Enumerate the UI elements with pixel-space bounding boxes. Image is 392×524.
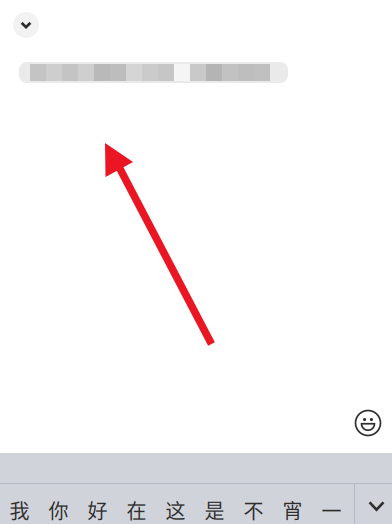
- button[interactable]: Hide candidates: [358, 484, 392, 524]
- staticText: 我: [9, 495, 29, 524]
- button[interactable]: 我: [0, 484, 39, 524]
- button[interactable]: 你: [39, 484, 78, 524]
- staticText: 这: [165, 495, 185, 524]
- button[interactable]: 是: [195, 484, 234, 524]
- staticText: 在: [126, 495, 146, 524]
- staticText: 你: [48, 495, 68, 524]
- button[interactable]: 好: [78, 484, 117, 524]
- staticText: 一: [321, 495, 341, 524]
- button[interactable]: Emoji keyboard: [346, 403, 390, 443]
- button[interactable]: 在: [117, 484, 156, 524]
- button[interactable]: 不: [234, 484, 273, 524]
- button[interactable]: 这: [156, 484, 195, 524]
- staticText: 好: [87, 495, 107, 524]
- button[interactable]: Scroll to latest message: [13, 12, 39, 38]
- button[interactable]: 一: [312, 484, 351, 524]
- staticText: 是: [204, 495, 224, 524]
- staticText: 宵: [282, 495, 302, 524]
- staticText: 不: [243, 495, 263, 524]
- button[interactable]: 宵: [273, 484, 312, 524]
